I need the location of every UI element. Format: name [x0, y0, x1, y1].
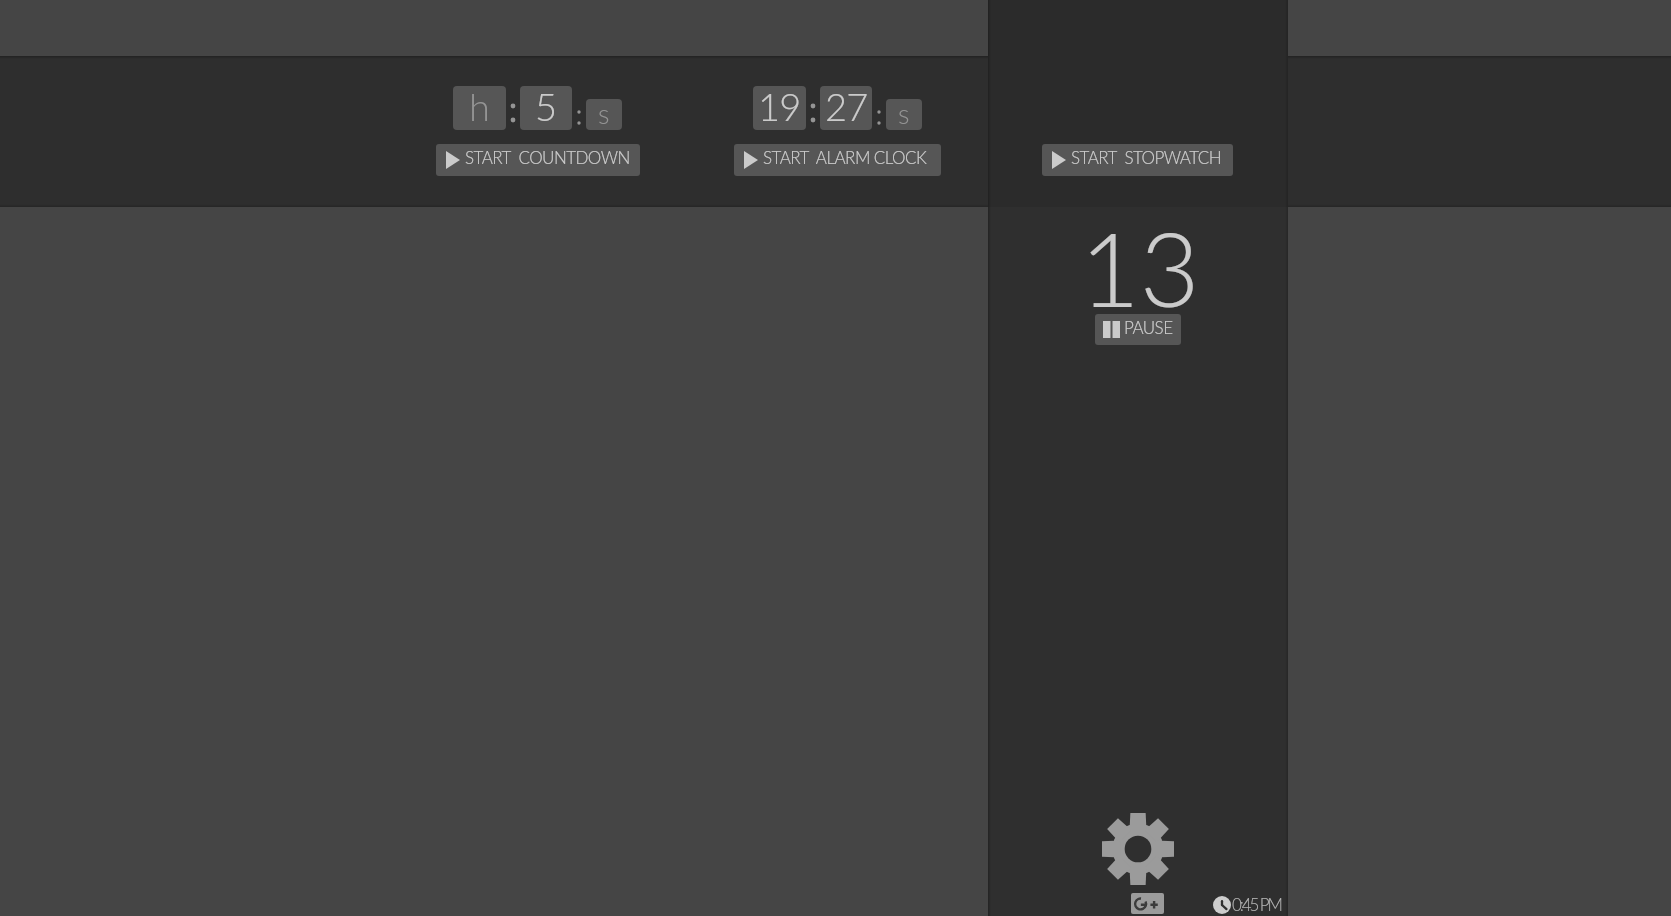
- staticText: 5: [535, 86, 558, 127]
- button[interactable]: 19: [753, 86, 806, 130]
- staticText: START ALARM CLOCK: [763, 147, 927, 167]
- staticText: h: [469, 86, 490, 127]
- staticText: 27: [825, 86, 868, 127]
- button[interactable]: START COUNTDOWN: [436, 144, 640, 176]
- button[interactable]: Settings: [1102, 813, 1174, 885]
- staticText: START STOPWATCH: [1071, 147, 1222, 167]
- staticText: s: [598, 99, 610, 128]
- button[interactable]: 27: [820, 86, 872, 130]
- button[interactable]: h: [453, 86, 506, 130]
- button[interactable]: 5: [520, 86, 572, 130]
- button[interactable]: Share on Google Plus: [1131, 893, 1164, 914]
- staticText: s: [898, 99, 910, 128]
- staticText: 13: [1080, 205, 1200, 329]
- button[interactable]: START ALARM CLOCK: [734, 144, 941, 176]
- staticText: START COUNTDOWN: [465, 147, 630, 167]
- button[interactable]: s: [586, 99, 622, 130]
- staticText: 19: [758, 86, 801, 127]
- button[interactable]: PAUSE: [1095, 314, 1181, 345]
- staticText: 0:45 PM: [1232, 894, 1281, 914]
- button[interactable]: Current time 0:45 PM: [1212, 894, 1286, 916]
- button[interactable]: s: [886, 99, 922, 130]
- staticText: PAUSE: [1124, 317, 1173, 337]
- button[interactable]: START STOPWATCH: [1042, 144, 1233, 176]
